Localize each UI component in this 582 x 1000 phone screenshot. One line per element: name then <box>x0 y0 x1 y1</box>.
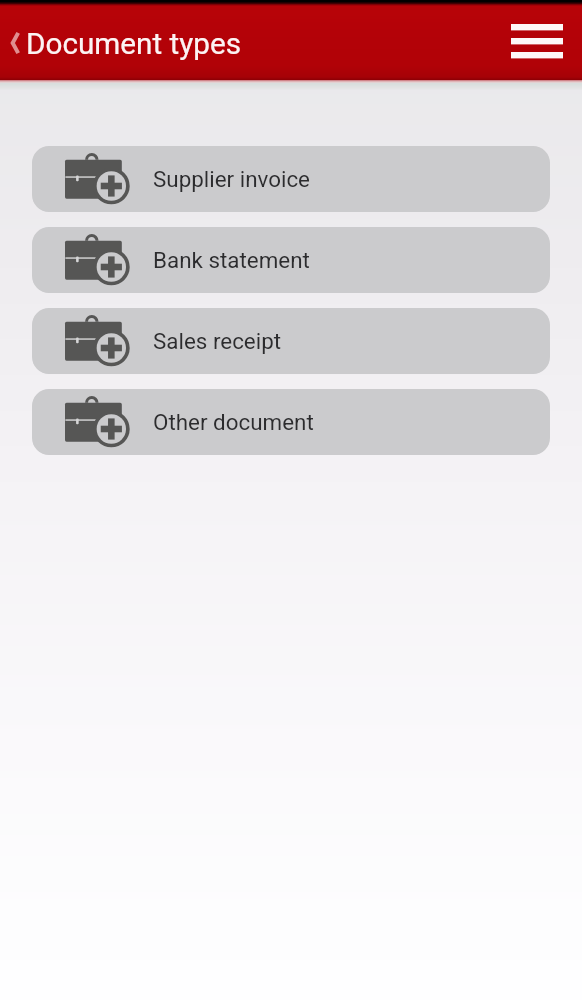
staticText: Supplier invoice <box>153 166 310 192</box>
staticText: Other document <box>153 409 314 435</box>
button[interactable]: Bank statement <box>32 227 550 293</box>
button[interactable]: Other document <box>32 389 550 455</box>
staticText: Document types <box>26 26 242 61</box>
staticText: Bank statement <box>153 247 310 273</box>
button[interactable]: Back <box>0 18 29 68</box>
button[interactable]: Menu <box>501 14 582 72</box>
button[interactable]: Sales receipt <box>32 308 550 374</box>
staticText: Sales receipt <box>153 328 282 354</box>
button[interactable]: Supplier invoice <box>32 146 550 212</box>
